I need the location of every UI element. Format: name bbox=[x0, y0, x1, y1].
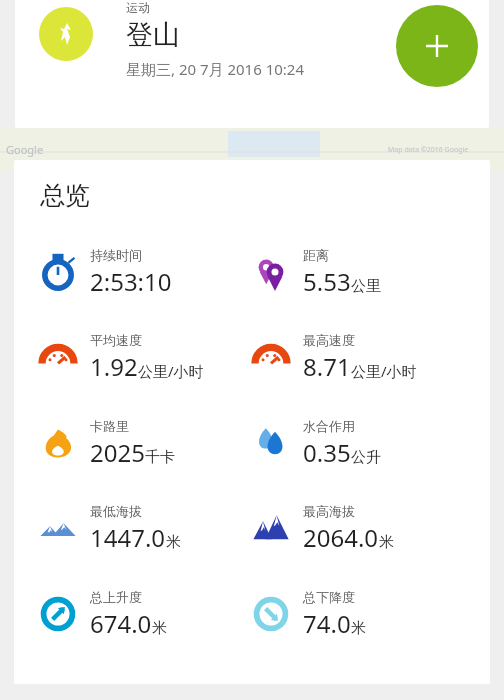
staticText: 总上升度 bbox=[90, 589, 142, 605]
staticText: 公里/小时 bbox=[351, 361, 417, 381]
staticText: 持续时间 bbox=[90, 247, 142, 263]
staticText: 距离 bbox=[303, 247, 329, 263]
staticText: 米 bbox=[152, 619, 167, 638]
staticText: 0.35 bbox=[303, 436, 351, 469]
staticText: 总下降度 bbox=[303, 589, 355, 605]
staticText: 公里/小时 bbox=[138, 361, 204, 381]
staticText: 2025 bbox=[90, 436, 145, 469]
button[interactable]: Add bbox=[396, 5, 478, 87]
staticText: 星期三, 20 7月 2016 10:24 bbox=[126, 59, 305, 79]
staticText: 运动 bbox=[126, 0, 150, 15]
staticText: 水合作用 bbox=[303, 418, 355, 434]
button[interactable]: 平均速度 bbox=[38, 323, 251, 391]
staticText: 米 bbox=[166, 533, 181, 552]
staticText: 米 bbox=[379, 533, 394, 552]
button[interactable]: 总上升度 bbox=[38, 580, 251, 648]
staticText: 5.53 bbox=[303, 265, 351, 298]
button[interactable]: 运动 bbox=[15, 0, 489, 128]
button[interactable]: 距离 bbox=[251, 238, 464, 306]
staticText: Map data ©2016 Google bbox=[388, 145, 469, 155]
button[interactable]: 最低海拔 bbox=[38, 494, 251, 562]
staticText: 登山 bbox=[126, 18, 180, 52]
staticText: 2064.0 bbox=[303, 521, 379, 554]
staticText: 米 bbox=[351, 619, 366, 638]
staticText: 1.92 bbox=[90, 350, 138, 383]
staticText: 总览 bbox=[40, 180, 90, 211]
staticText: 公里 bbox=[351, 277, 381, 296]
staticText: 平均速度 bbox=[90, 332, 142, 348]
button[interactable]: 总下降度 bbox=[251, 580, 464, 648]
staticText: 最高速度 bbox=[303, 332, 355, 348]
button[interactable]: 水合作用 bbox=[251, 409, 464, 477]
button[interactable]: 最高海拔 bbox=[251, 494, 464, 562]
button[interactable]: 持续时间 bbox=[38, 238, 251, 306]
staticText: 2:53:10 bbox=[90, 265, 172, 298]
staticText: 公升 bbox=[351, 448, 381, 467]
staticText: 1447.0 bbox=[90, 521, 166, 554]
staticText: 最高海拔 bbox=[303, 503, 355, 519]
staticText: Google bbox=[6, 142, 44, 157]
button[interactable]: 卡路里 bbox=[38, 409, 251, 477]
staticText: 674.0 bbox=[90, 607, 152, 640]
staticText: 74.0 bbox=[303, 607, 351, 640]
staticText: 卡路里 bbox=[90, 418, 129, 434]
staticText: 千卡 bbox=[145, 448, 175, 467]
staticText: 8.71 bbox=[303, 350, 351, 383]
staticText: 最低海拔 bbox=[90, 503, 142, 519]
button[interactable]: 最高速度 bbox=[251, 323, 464, 391]
